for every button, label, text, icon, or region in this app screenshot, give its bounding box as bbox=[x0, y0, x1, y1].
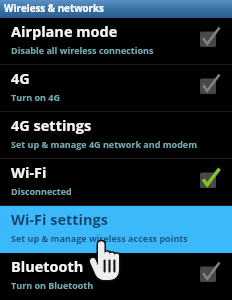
button[interactable]: Off, unchecked bbox=[184, 253, 232, 300]
button[interactable]: Airplane mode bbox=[0, 18, 232, 65]
staticText: Bluetooth bbox=[11, 257, 84, 277]
button[interactable]: Off, unchecked bbox=[184, 65, 232, 112]
button[interactable]: Wi-Fi settings bbox=[0, 206, 232, 253]
staticText: Turn on 4G bbox=[11, 91, 60, 103]
button[interactable]: Wi-Fi bbox=[0, 159, 232, 206]
staticText: 4G bbox=[11, 69, 30, 89]
button[interactable]: Off, unchecked bbox=[184, 18, 232, 65]
staticText: Airplane mode bbox=[11, 22, 118, 42]
button[interactable]: 4G settings bbox=[0, 112, 232, 159]
button[interactable]: Wi-Fi on, checked bbox=[184, 159, 232, 206]
button[interactable]: 4G bbox=[0, 65, 232, 112]
staticText: Disable all wireless connections bbox=[11, 44, 154, 56]
staticText: Set up & manage wireless access points bbox=[11, 232, 188, 244]
staticText: Set up & manage 4G network and modem bbox=[11, 138, 197, 150]
staticText: Wireless & networks bbox=[4, 2, 104, 15]
staticText: 4G settings bbox=[11, 116, 92, 136]
staticText: Disconnected bbox=[11, 185, 72, 197]
staticText: Turn on Bluetooth bbox=[11, 279, 94, 291]
button[interactable]: Bluetooth bbox=[0, 253, 232, 300]
staticText: Wi-Fi bbox=[11, 163, 47, 183]
staticText: Wi-Fi settings bbox=[11, 210, 108, 230]
